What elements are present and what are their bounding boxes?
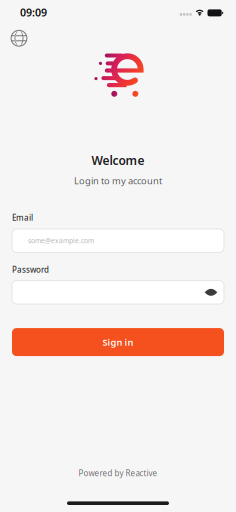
staticText: Powered by Reactive	[78, 468, 157, 478]
staticText: Sign in	[102, 336, 133, 348]
button[interactable]: Change language	[10, 29, 28, 47]
staticText: Email	[12, 212, 33, 223]
staticText: Welcome	[91, 152, 144, 168]
staticText: Login to my account	[74, 174, 162, 187]
staticText: some@example.com	[28, 236, 94, 245]
staticText: 09:09	[20, 5, 47, 19]
button[interactable]: Sign in	[12, 328, 224, 356]
staticText: Password	[12, 264, 49, 275]
button[interactable]: Show password	[203, 284, 219, 300]
